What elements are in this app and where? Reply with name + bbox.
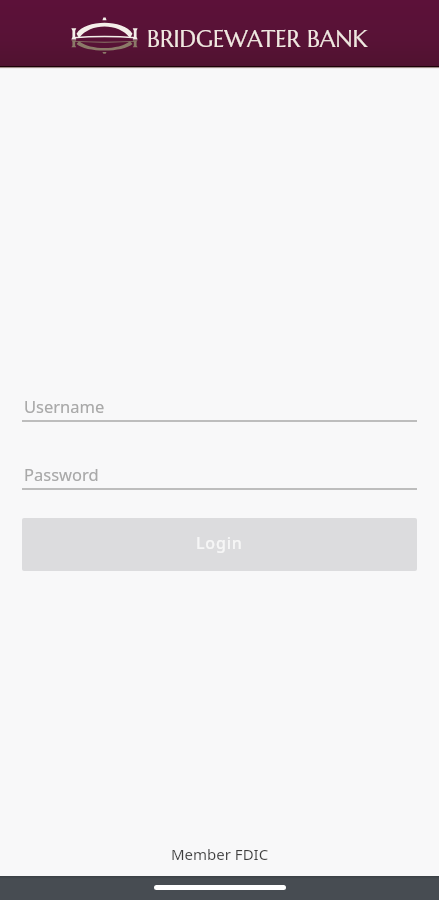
button[interactable]: Password [22, 463, 417, 490]
button[interactable]: Username [22, 395, 417, 422]
staticText: Username [24, 395, 105, 417]
other: Home [154, 885, 286, 890]
staticText: BRIDGEWATER BANK [147, 25, 368, 54]
staticText: Login [196, 532, 243, 554]
other: Bridgewater Bank logo [71, 19, 138, 53]
staticText: Password [24, 463, 99, 485]
staticText: Member FDIC [171, 844, 269, 864]
